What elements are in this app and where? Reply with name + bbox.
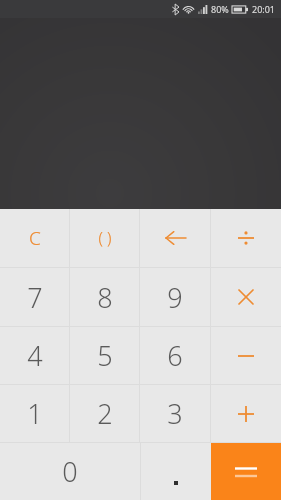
- button[interactable]: 0: [0, 443, 140, 500]
- button[interactable]: 5: [70, 327, 139, 384]
- button[interactable]: C: [0, 209, 69, 267]
- staticText: 80%: [211, 3, 229, 15]
- button[interactable]: 9: [140, 268, 210, 326]
- staticText: 7: [27, 279, 43, 316]
- button[interactable]: Decimal point: [141, 443, 211, 500]
- button[interactable]: Plus: [211, 385, 281, 442]
- button[interactable]: Equals: [211, 443, 281, 500]
- button[interactable]: Backspace: [140, 209, 210, 267]
- button[interactable]: ( ): [70, 209, 139, 267]
- button[interactable]: 1: [0, 385, 69, 442]
- staticText: 4: [27, 337, 43, 374]
- button[interactable]: Multiply: [211, 268, 281, 326]
- button[interactable]: 3: [140, 385, 210, 442]
- button[interactable]: Minus: [211, 327, 281, 384]
- button[interactable]: 4: [0, 327, 69, 384]
- staticText: 3: [167, 395, 183, 432]
- staticText: 5: [97, 337, 113, 374]
- button[interactable]: 8: [70, 268, 139, 326]
- staticText: 1: [27, 395, 43, 432]
- button[interactable]: 2: [70, 385, 139, 442]
- button[interactable]: 6: [140, 327, 210, 384]
- staticText: 0: [62, 453, 78, 490]
- staticText: 2: [97, 395, 113, 432]
- staticText: 20:01: [252, 3, 276, 15]
- staticText: C: [29, 225, 41, 251]
- staticText: 6: [167, 337, 183, 374]
- button[interactable]: Divide: [211, 209, 281, 267]
- button[interactable]: 7: [0, 268, 69, 326]
- staticText: 9: [167, 279, 183, 316]
- staticText: 8: [97, 279, 113, 316]
- staticText: ( ): [98, 227, 112, 249]
